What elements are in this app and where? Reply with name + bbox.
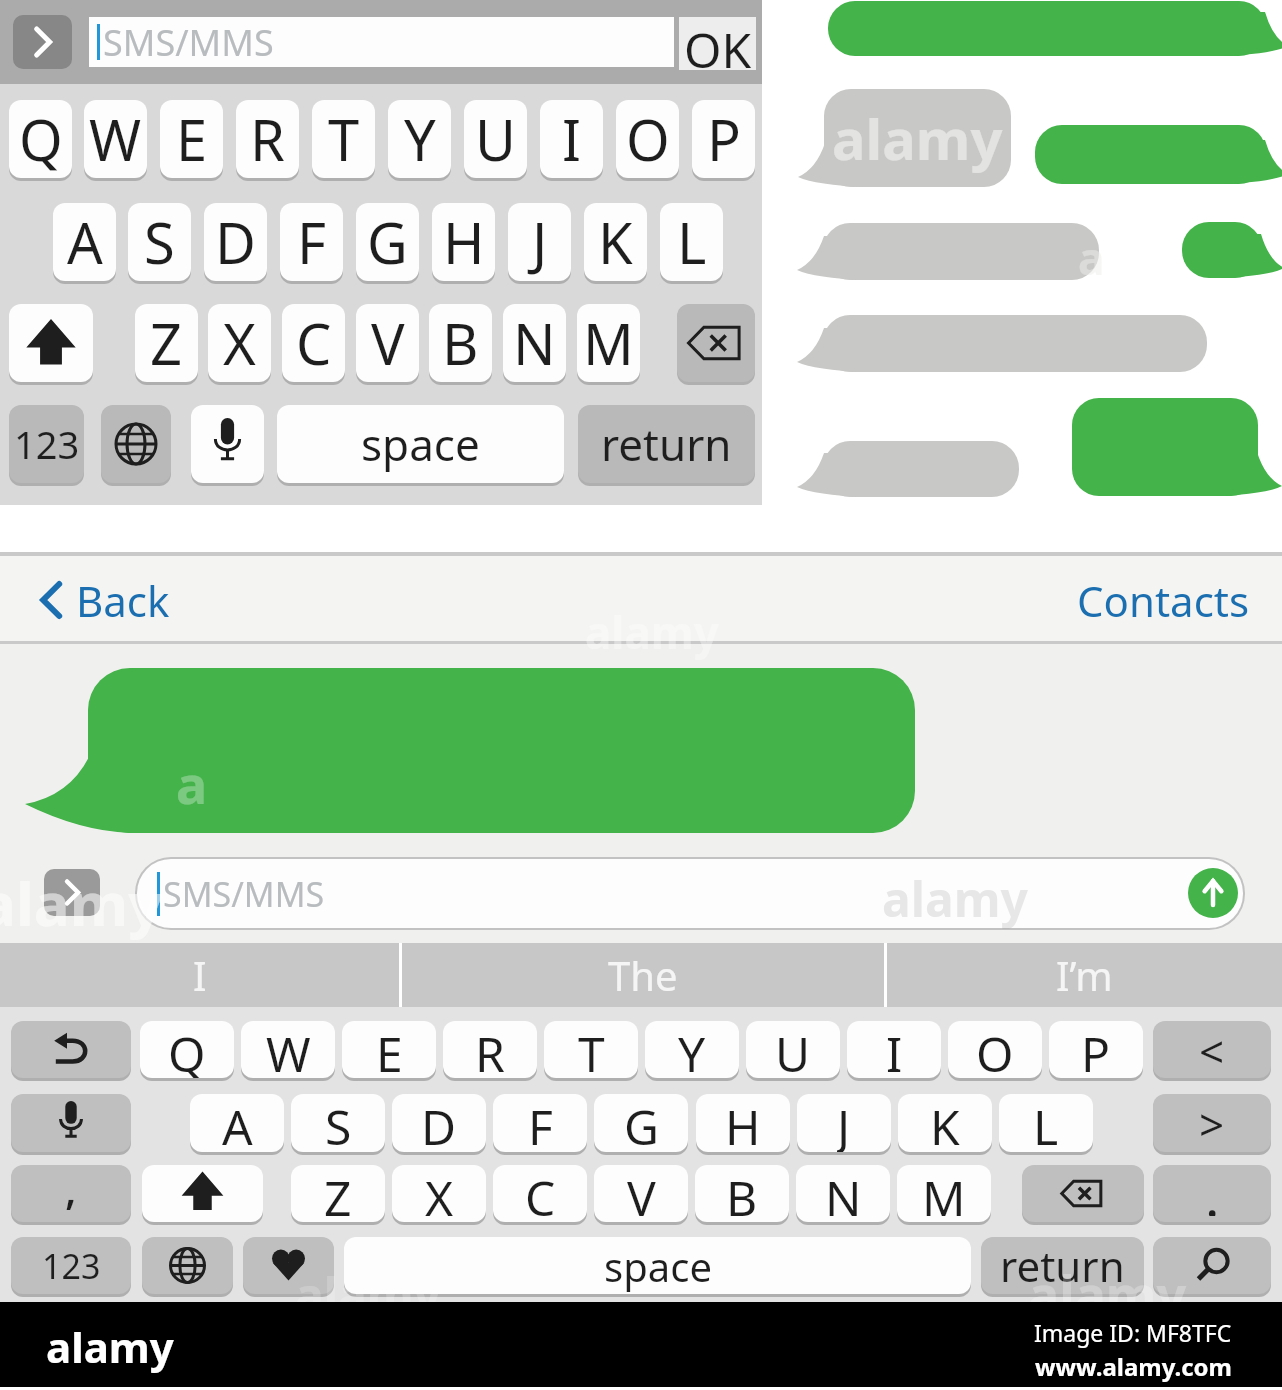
button[interactable]: V (356, 304, 419, 382)
button[interactable]: Contacts (1040, 570, 1250, 630)
button[interactable]: N (796, 1165, 890, 1222)
staticText: V (371, 305, 405, 381)
button[interactable] (142, 1237, 233, 1294)
button[interactable] (101, 405, 171, 483)
button[interactable]: T (544, 1021, 638, 1078)
button[interactable]: N (503, 304, 566, 382)
staticText: Y (404, 101, 436, 177)
button[interactable]: OK (679, 17, 756, 70)
button[interactable]: , (11, 1165, 131, 1222)
button[interactable] (89, 17, 674, 67)
button[interactable]: U (746, 1021, 840, 1078)
button[interactable]: F (280, 203, 343, 281)
button[interactable]: A (190, 1094, 284, 1152)
button[interactable]: Q (9, 100, 72, 178)
button[interactable]: D (392, 1094, 486, 1152)
button[interactable]: W (84, 100, 147, 178)
button[interactable]: U (464, 100, 527, 178)
button[interactable]: J (797, 1094, 891, 1152)
staticText: Q (168, 1021, 206, 1078)
button[interactable]: The (402, 943, 884, 1007)
button[interactable]: I (0, 943, 399, 1007)
button[interactable]: G (594, 1094, 688, 1152)
button[interactable]: Q (140, 1021, 234, 1078)
button[interactable]: J (508, 203, 571, 281)
button[interactable]: R (236, 100, 299, 178)
button[interactable]: S (291, 1094, 385, 1152)
staticText: I (886, 1021, 903, 1078)
staticText: return (601, 414, 732, 474)
button[interactable]: . (1153, 1165, 1271, 1222)
button[interactable]: I (847, 1021, 941, 1078)
button[interactable]: 123 (9, 405, 84, 483)
button[interactable]: V (594, 1165, 688, 1222)
button[interactable]: < (1153, 1021, 1271, 1078)
button[interactable] (9, 304, 93, 382)
button[interactable]: R (443, 1021, 537, 1078)
button[interactable]: S (128, 203, 191, 281)
button[interactable]: L (660, 203, 723, 281)
button[interactable]: C (282, 304, 345, 382)
staticText: L (677, 204, 707, 280)
button[interactable]: H (432, 203, 495, 281)
button[interactable]: return (981, 1237, 1144, 1294)
button[interactable]: H (696, 1094, 790, 1152)
button[interactable] (11, 1094, 131, 1152)
button[interactable]: Y (388, 100, 451, 178)
button[interactable]: return (578, 405, 755, 483)
button[interactable] (13, 15, 72, 69)
button[interactable]: I (540, 100, 603, 178)
button[interactable]: F (493, 1094, 587, 1152)
button[interactable] (677, 304, 755, 382)
staticText: G (624, 1094, 659, 1152)
button[interactable] (243, 1237, 334, 1294)
button[interactable] (135, 857, 1245, 930)
button[interactable] (11, 1021, 131, 1078)
button[interactable]: T (312, 100, 375, 178)
staticText: alamy (1028, 1258, 1187, 1329)
button[interactable]: E (342, 1021, 436, 1078)
button[interactable] (1153, 1237, 1271, 1294)
button[interactable]: Z (291, 1165, 385, 1222)
button[interactable]: B (695, 1165, 789, 1222)
button[interactable]: > (1153, 1094, 1271, 1152)
button[interactable]: Z (135, 304, 198, 382)
button[interactable]: K (584, 203, 647, 281)
button[interactable]: E (160, 100, 223, 178)
button[interactable]: O (948, 1021, 1042, 1078)
button[interactable] (191, 405, 264, 483)
button[interactable]: B (429, 304, 492, 382)
button[interactable] (142, 1165, 263, 1222)
button[interactable]: O (616, 100, 679, 178)
button[interactable]: G (356, 203, 419, 281)
button[interactable] (44, 869, 100, 916)
staticText: A (222, 1094, 253, 1152)
button[interactable]: M (897, 1165, 991, 1222)
staticText: return (1000, 1237, 1125, 1294)
staticText: Z (324, 1165, 352, 1222)
button[interactable]: Y (645, 1021, 739, 1078)
button[interactable] (1022, 1165, 1144, 1222)
button[interactable]: Back (30, 570, 230, 630)
button[interactable]: A (53, 203, 116, 281)
staticText: O (976, 1021, 1014, 1078)
button[interactable]: I’m (887, 943, 1282, 1007)
button[interactable]: K (898, 1094, 992, 1152)
staticText: alamy (0, 862, 163, 944)
staticText: N (825, 1165, 862, 1222)
button[interactable]: P (1049, 1021, 1143, 1078)
staticText: S (325, 1094, 352, 1152)
button[interactable]: L (999, 1094, 1093, 1152)
button[interactable]: M (577, 304, 640, 382)
button[interactable]: space (277, 405, 564, 483)
staticText: F (528, 1094, 553, 1152)
button[interactable]: C (493, 1165, 587, 1222)
button[interactable]: D (204, 203, 267, 281)
button[interactable]: 123 (11, 1237, 131, 1294)
button[interactable]: X (392, 1165, 486, 1222)
button[interactable] (1188, 868, 1238, 918)
button[interactable]: W (241, 1021, 335, 1078)
button[interactable]: X (208, 304, 271, 382)
button[interactable]: P (692, 100, 755, 178)
button[interactable]: space (344, 1237, 971, 1294)
